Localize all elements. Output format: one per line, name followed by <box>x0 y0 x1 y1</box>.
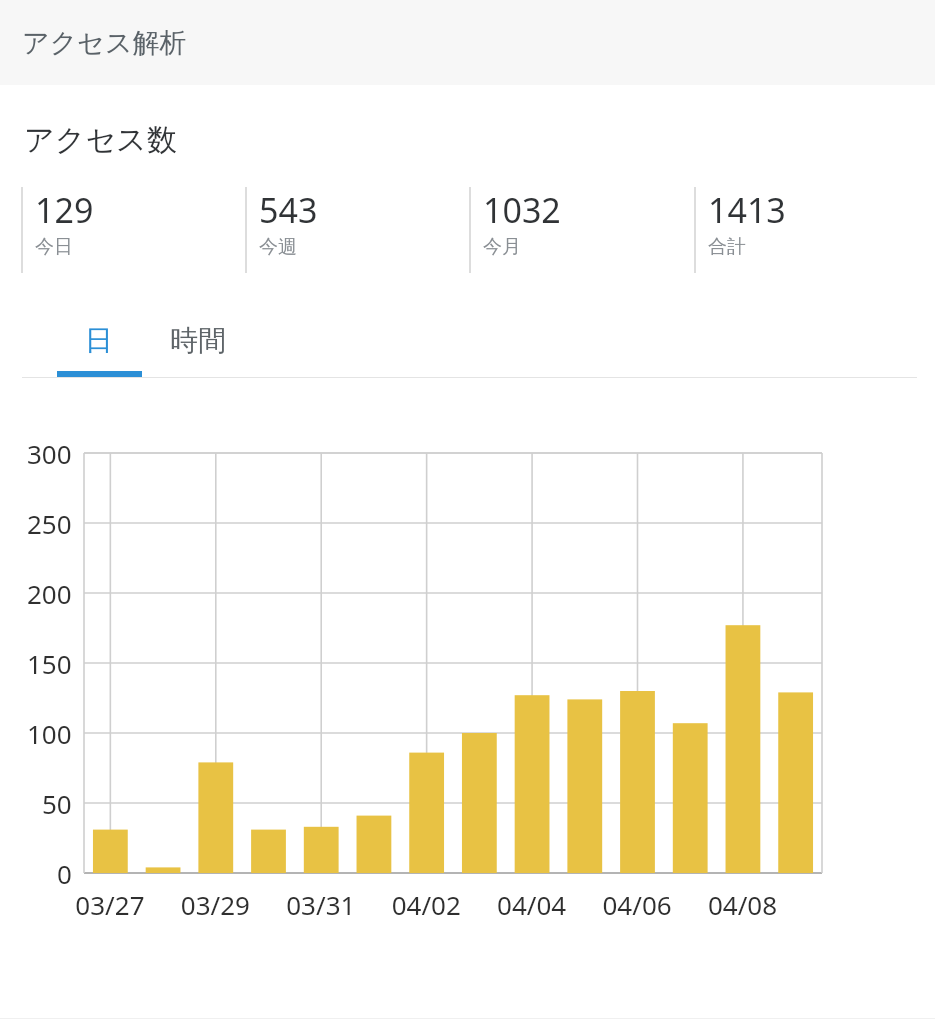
button[interactable]: 129 <box>21 187 245 273</box>
staticText: 日 <box>85 323 113 358</box>
staticText: アクセス解析 <box>22 26 187 60</box>
staticText: 今日 <box>35 235 73 259</box>
staticText: 今月 <box>483 235 521 259</box>
button[interactable]: 1032 <box>469 187 694 273</box>
staticText: 129 <box>35 187 94 233</box>
staticText: 1413 <box>708 187 786 233</box>
staticText: 1032 <box>483 187 561 233</box>
button[interactable]: 時間 <box>143 309 253 377</box>
staticText: 合計 <box>708 235 746 259</box>
button[interactable]: 日 <box>55 309 143 377</box>
staticText: 時間 <box>170 323 226 358</box>
button[interactable]: 543 <box>245 187 469 273</box>
button[interactable]: 1413 <box>694 187 919 273</box>
staticText: 今週 <box>259 235 297 259</box>
staticText: 543 <box>259 187 318 233</box>
staticText: アクセス数 <box>24 121 177 159</box>
